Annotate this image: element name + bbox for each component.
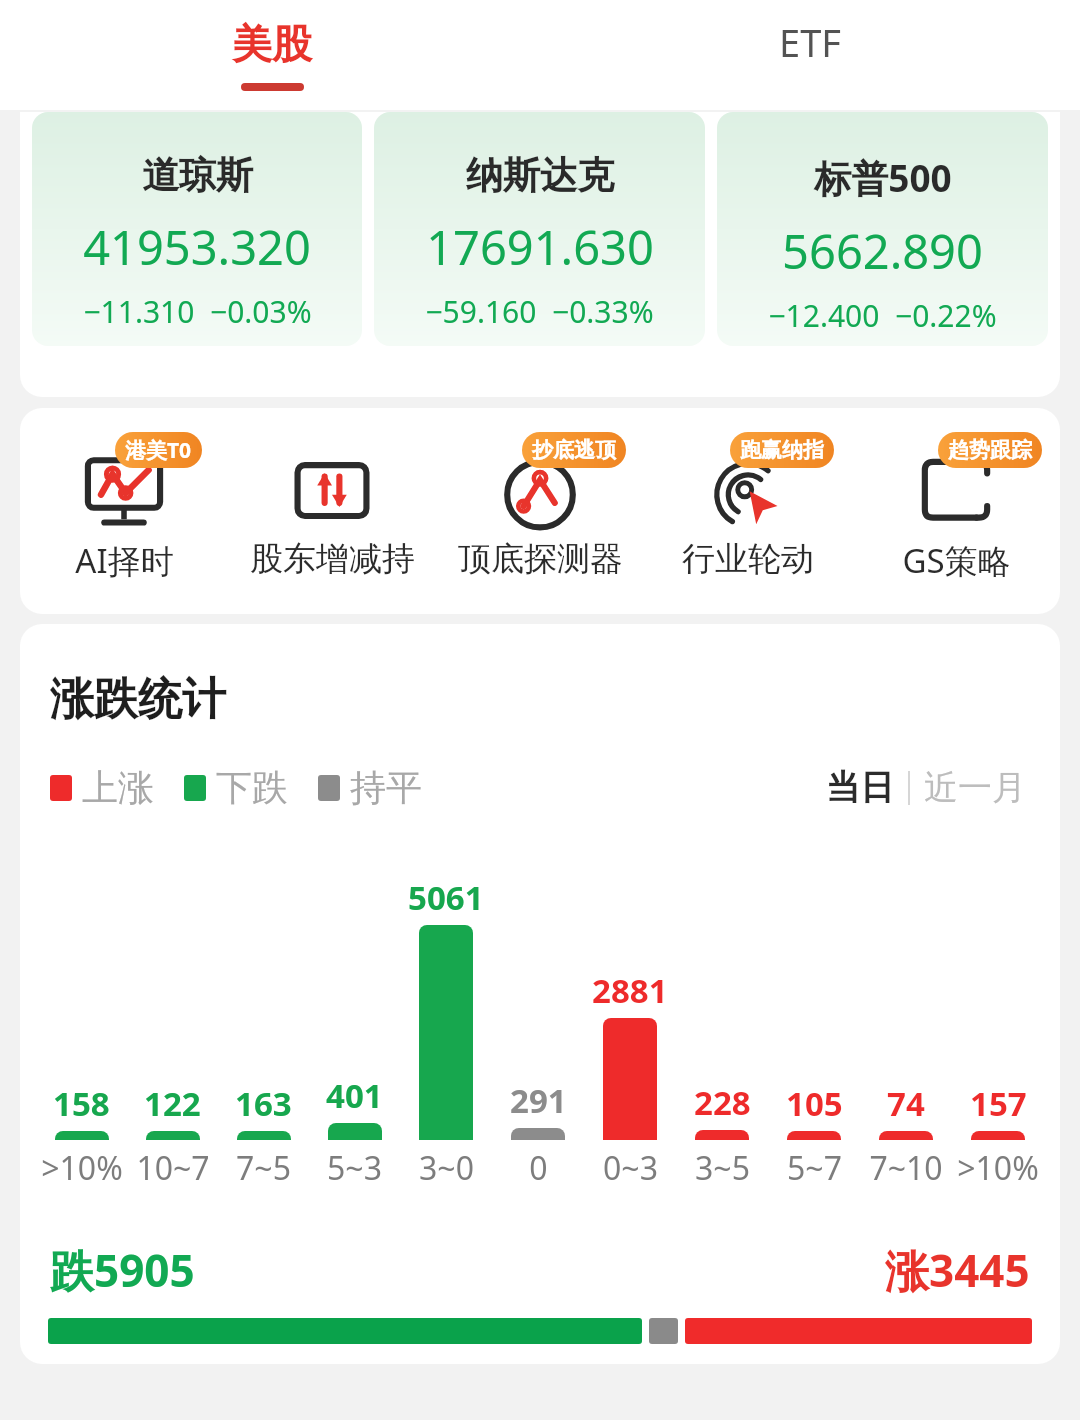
- staticText: 2881: [592, 968, 668, 1013]
- button[interactable]: 趋势跟踪: [852, 426, 1060, 614]
- staticText: 0: [529, 1146, 548, 1190]
- staticText: 17691.630: [426, 215, 654, 279]
- staticText: 行业轮动: [682, 538, 814, 580]
- staticText: >10%: [957, 1146, 1039, 1190]
- staticText: 122: [144, 1081, 201, 1126]
- staticText: 41953.320: [83, 215, 311, 279]
- staticText: 158: [53, 1081, 110, 1126]
- staticText: 163: [235, 1081, 292, 1126]
- button[interactable]: 抄底逃顶: [436, 426, 644, 614]
- staticText: ETF: [779, 16, 841, 68]
- staticText: 近一月: [924, 766, 1026, 809]
- staticText: −11.310 −0.03%: [83, 291, 312, 332]
- staticText: 0~3: [603, 1146, 658, 1190]
- staticText: 跌5905: [50, 1240, 195, 1300]
- staticText: 7~5: [236, 1146, 291, 1190]
- button[interactable]: ETF: [700, 0, 920, 110]
- staticText: 7~10: [869, 1146, 943, 1190]
- staticText: 涨3445: [885, 1240, 1030, 1300]
- staticText: 涨跌统计: [50, 672, 226, 727]
- staticText: 美股: [232, 19, 312, 69]
- button[interactable]: 近一月: [920, 766, 1030, 809]
- button[interactable]: 道琼斯: [32, 112, 362, 346]
- staticText: 5061: [408, 875, 484, 920]
- staticText: 291: [510, 1078, 567, 1123]
- staticText: 3~0: [419, 1146, 474, 1190]
- staticText: AI择时: [75, 538, 174, 583]
- staticText: 5~7: [787, 1146, 842, 1190]
- button[interactable]: 标普500: [717, 112, 1048, 346]
- staticText: 持平: [350, 765, 422, 810]
- staticText: 10~7: [136, 1146, 210, 1190]
- staticText: GS策略: [902, 538, 1011, 583]
- staticText: 105: [786, 1081, 843, 1126]
- button[interactable]: 港美T0: [20, 426, 228, 614]
- button[interactable]: 美股: [180, 0, 363, 110]
- staticText: 401: [326, 1073, 383, 1118]
- staticText: 5662.890: [782, 219, 983, 283]
- staticText: −12.400 −0.22%: [768, 295, 997, 336]
- staticText: 纳斯达克: [466, 152, 614, 199]
- staticText: 5~3: [327, 1146, 382, 1190]
- staticText: 上涨: [82, 765, 154, 810]
- staticText: 跑赢纳指: [740, 437, 824, 463]
- staticText: 顶底探测器: [458, 538, 623, 580]
- staticText: 228: [694, 1080, 751, 1125]
- staticText: 标普500: [814, 152, 952, 203]
- staticText: >10%: [41, 1146, 123, 1190]
- staticText: 74: [887, 1081, 925, 1126]
- button[interactable]: 纳斯达克: [374, 112, 705, 346]
- staticText: 157: [970, 1081, 1027, 1126]
- staticText: 3~5: [695, 1146, 750, 1190]
- staticText: 道琼斯: [142, 152, 253, 199]
- staticText: 下跌: [216, 765, 288, 810]
- staticText: 港美T0: [125, 436, 192, 465]
- staticText: 股东增减持: [250, 538, 415, 580]
- staticText: 抄底逃顶: [532, 437, 616, 463]
- staticText: 当日: [826, 766, 894, 809]
- button[interactable]: 跑赢纳指: [644, 426, 852, 614]
- staticText: 趋势跟踪: [948, 437, 1032, 463]
- button[interactable]: 当日: [822, 766, 898, 809]
- button[interactable]: 股东增减持: [228, 426, 436, 614]
- staticText: −59.160 −0.33%: [425, 291, 654, 332]
